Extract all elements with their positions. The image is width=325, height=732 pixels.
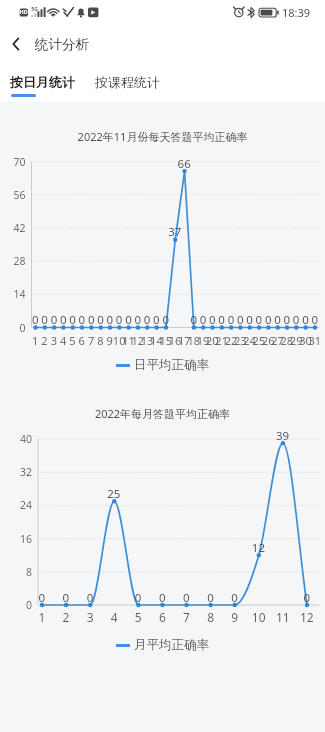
button[interactable]: Back [0,28,32,60]
staticText: 日平均正确率 [134,357,209,373]
staticText: 2022年每月答题平均正确率 [0,406,325,421]
staticText: 按课程统计 [95,74,160,90]
staticText: 2022年11月份每天答题平均正确率 [0,129,325,144]
staticText: 按日月统计 [10,74,75,90]
staticText: 统计分析 [35,36,89,53]
staticText: 月平均正确率 [134,637,209,653]
button[interactable]: 按日月统计 [2,68,82,102]
button[interactable]: 按课程统计 [88,68,168,102]
